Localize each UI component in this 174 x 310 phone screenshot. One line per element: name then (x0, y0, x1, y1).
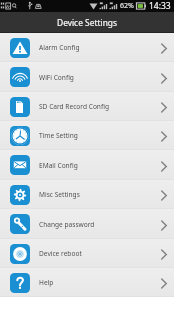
button[interactable]: WiFi Config (0, 62, 174, 92)
staticText: Alarm Config (39, 43, 80, 52)
staticText: Misc Settings (39, 190, 80, 199)
staticText: Time Setting (39, 131, 78, 140)
staticText: Device reboot (39, 249, 82, 258)
staticText: EMail Config (39, 161, 78, 170)
button[interactable]: SD Card Record Config (0, 92, 174, 121)
button[interactable]: EMail Config (0, 150, 174, 180)
staticText: 62% (120, 1, 134, 11)
button[interactable]: Misc Settings (0, 180, 174, 209)
staticText: Device Settings (57, 17, 117, 28)
staticText: WiFi Config (39, 73, 74, 82)
button[interactable]: Help (0, 268, 174, 297)
staticText: SD Card Record Config (39, 102, 109, 111)
button[interactable]: Change password (0, 209, 174, 239)
button[interactable]: Device reboot (0, 239, 174, 268)
staticText: 14:33 (149, 0, 171, 12)
staticText: Help (39, 278, 54, 287)
button[interactable]: Time Setting (0, 121, 174, 150)
button[interactable]: Alarm Config (0, 33, 174, 62)
staticText: Change password (39, 220, 95, 229)
